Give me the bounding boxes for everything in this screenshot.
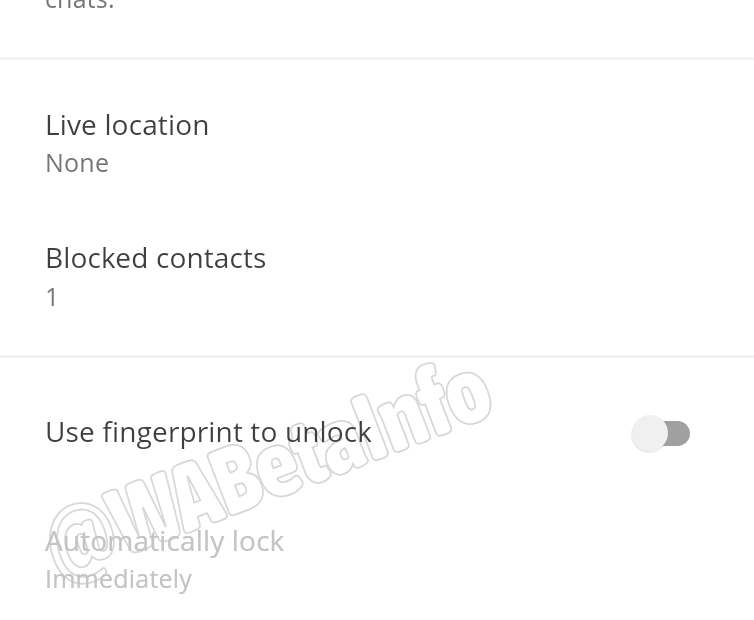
button[interactable]: Use fingerprint to unlock, off [628,412,694,454]
button[interactable]: Live location, None [0,60,754,168]
button[interactable]: Blocked contacts, 1 [0,194,754,302]
button[interactable]: Automatically lock, Immediately [0,500,754,605]
button[interactable]: Use fingerprint to unlock row [0,390,754,476]
